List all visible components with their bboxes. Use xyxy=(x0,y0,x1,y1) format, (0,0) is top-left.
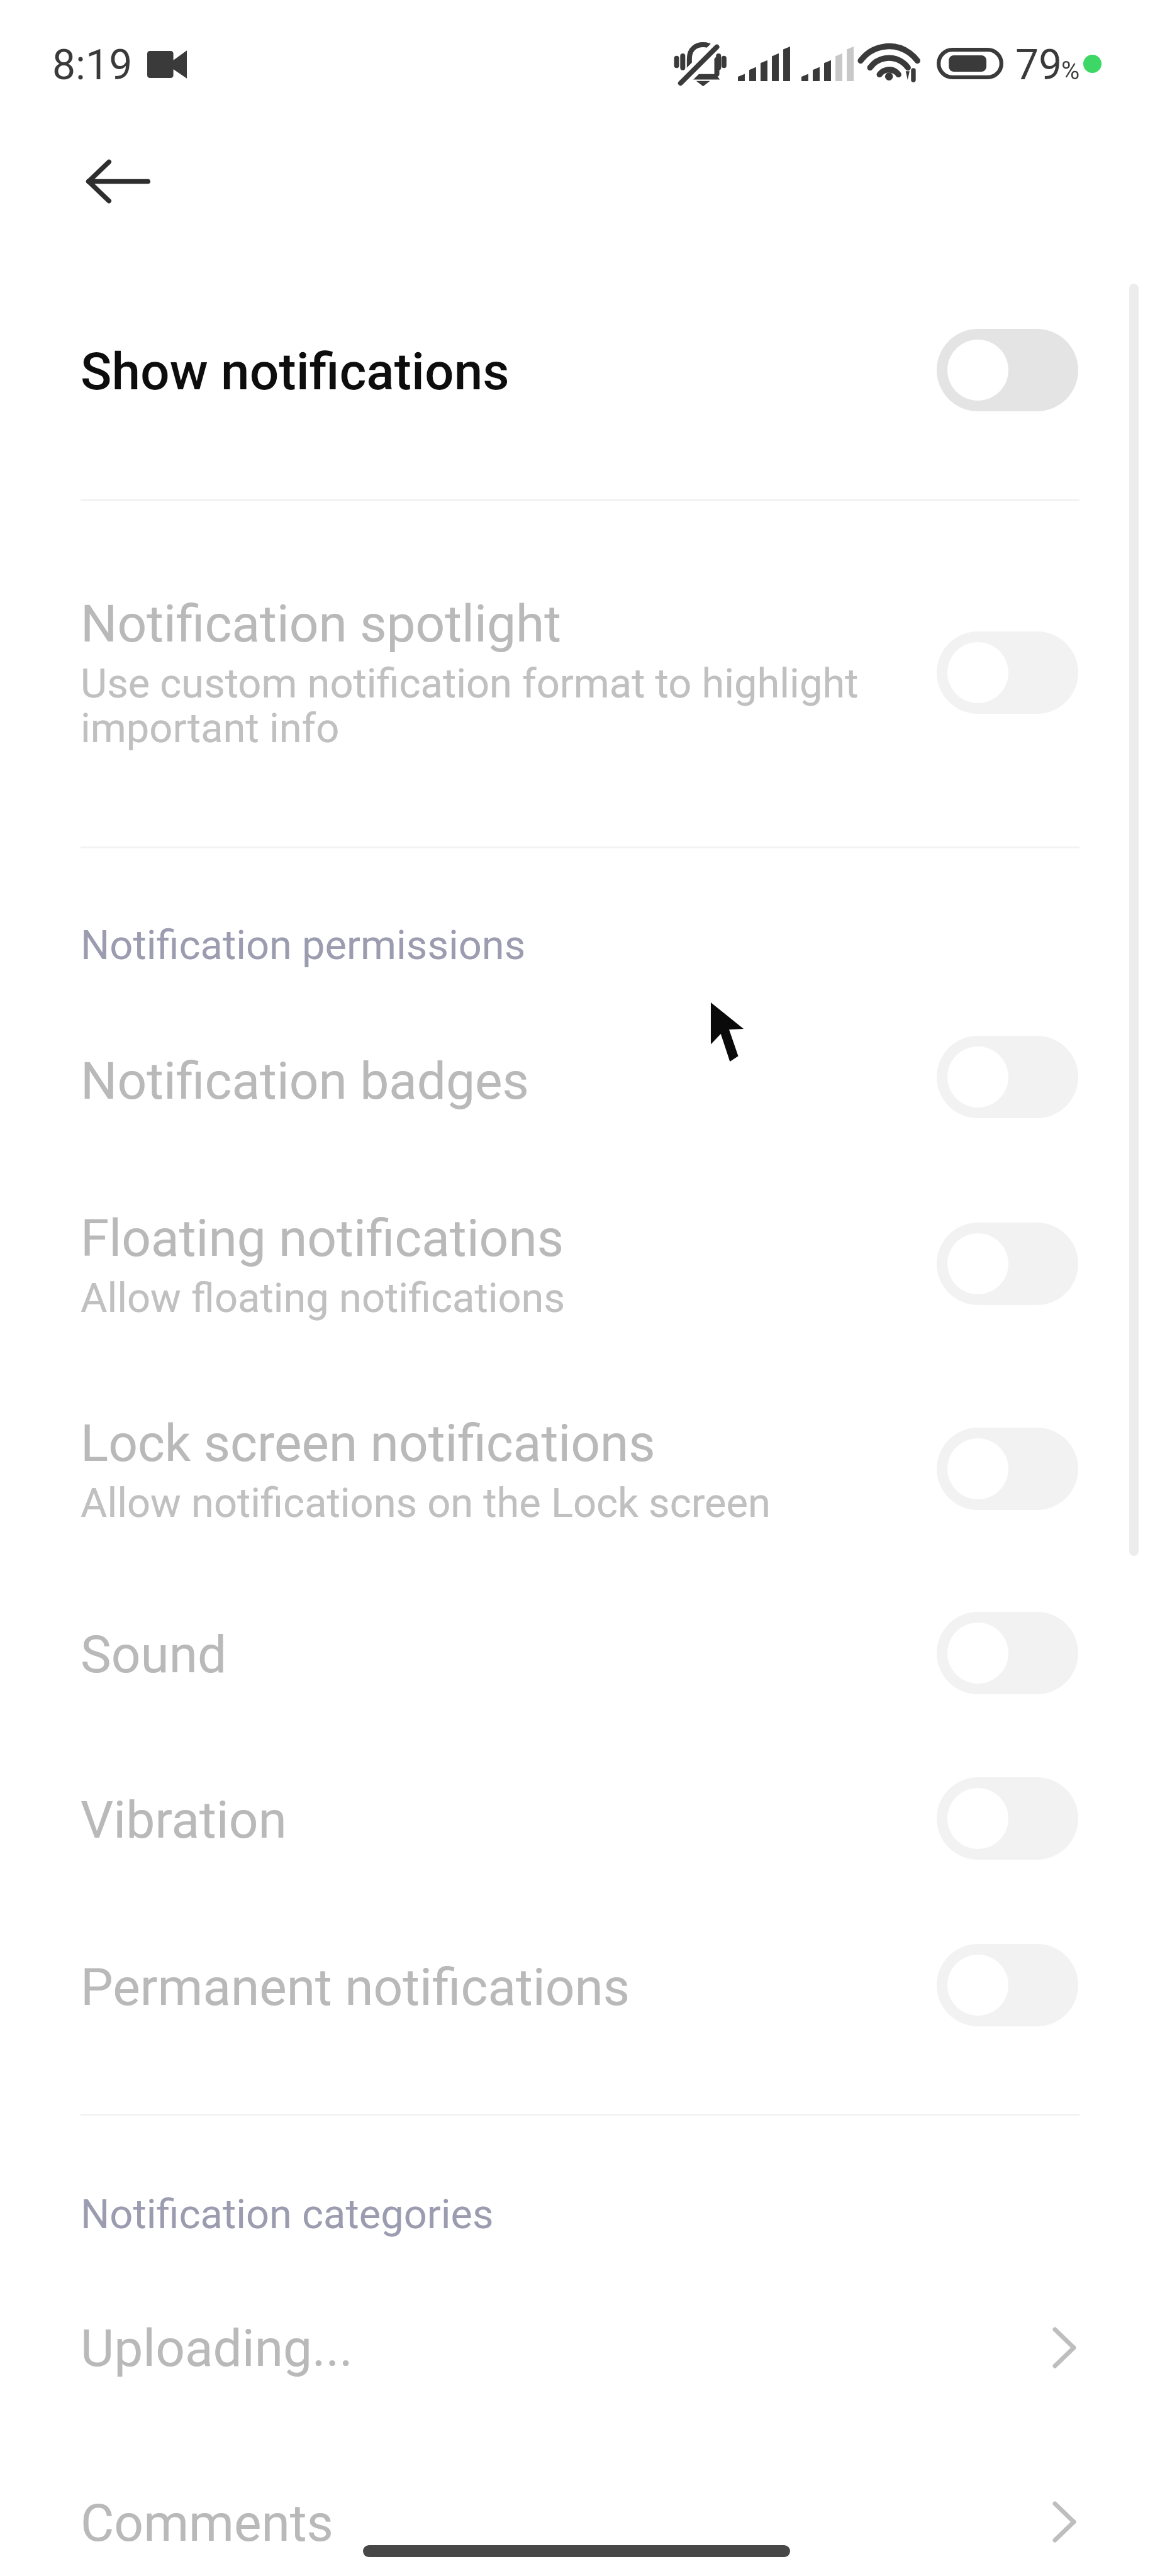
staticText: Allow notifications on the Lock screen xyxy=(81,1479,771,1527)
staticText: important info xyxy=(81,704,340,752)
button[interactable] xyxy=(0,2431,1160,2576)
staticText: % xyxy=(1061,56,1080,86)
button[interactable] xyxy=(0,989,1160,1137)
staticText: Notification categories xyxy=(81,2190,494,2238)
button[interactable] xyxy=(0,2257,1160,2404)
button[interactable] xyxy=(0,1563,1160,1711)
staticText: Use custom notification format to highli… xyxy=(81,660,859,708)
button[interactable] xyxy=(0,1168,1160,1347)
staticText: Floating notifications xyxy=(81,1208,564,1269)
staticText: Uploading... xyxy=(81,2318,353,2379)
button[interactable]: Toggle Notification badges xyxy=(937,1036,1078,1118)
staticText: Vibration xyxy=(81,1790,287,1850)
staticText: Notification permissions xyxy=(81,921,526,969)
staticText: Show notifications xyxy=(81,341,510,402)
button[interactable]: Back xyxy=(70,135,166,228)
button[interactable]: Toggle Vibration xyxy=(937,1777,1078,1860)
staticText: Allow floating notifications xyxy=(81,1274,566,1322)
button[interactable]: Toggle Notification spotlight xyxy=(937,631,1078,714)
button[interactable]: Toggle Floating notifications xyxy=(937,1223,1078,1305)
staticText: Comments xyxy=(81,2493,333,2553)
staticText: Sound xyxy=(81,1624,227,1685)
button[interactable] xyxy=(0,1373,1160,1552)
button[interactable]: Toggle Lock screen notifications xyxy=(937,1428,1078,1510)
staticText: Notification badges xyxy=(81,1051,529,1111)
button[interactable]: Toggle Show notifications xyxy=(937,329,1078,411)
button[interactable]: Toggle Permanent notifications xyxy=(937,1944,1078,2026)
button[interactable] xyxy=(0,1728,1160,1876)
staticText: 8:19 xyxy=(52,41,133,89)
staticText: 79 xyxy=(1015,41,1062,89)
staticText: Notification spotlight xyxy=(81,594,562,654)
button[interactable] xyxy=(0,547,1160,846)
staticText: Permanent notifications xyxy=(81,1957,630,2018)
button[interactable] xyxy=(0,1896,1160,2043)
button[interactable] xyxy=(0,297,1160,445)
button[interactable]: Toggle Sound xyxy=(937,1612,1078,1694)
staticText: Lock screen notifications xyxy=(81,1413,655,1474)
